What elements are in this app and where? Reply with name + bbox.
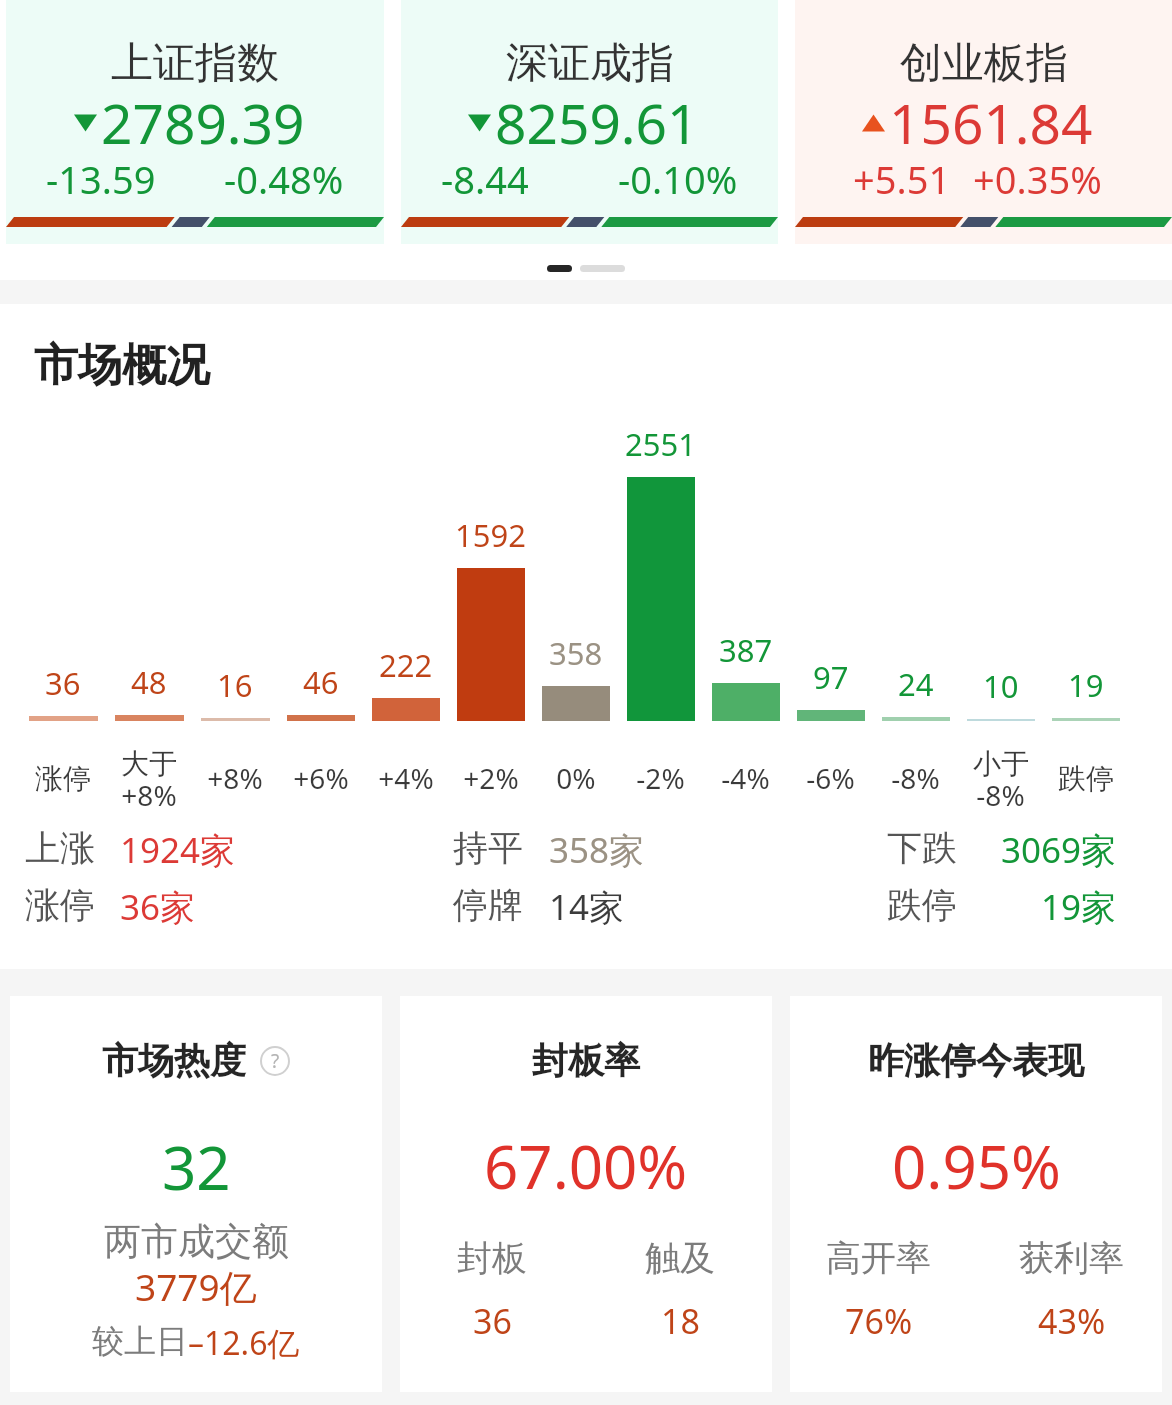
staticText: +0.35% (973, 153, 1102, 205)
button[interactable]: 市场热度 (10, 996, 382, 1392)
button[interactable]: 上证指数 (6, 0, 384, 244)
staticText: 43% (1038, 1298, 1106, 1344)
staticText: +6% (293, 759, 349, 797)
staticText: 222 (379, 644, 433, 686)
staticText: 48 (131, 661, 167, 703)
staticText: 36家 (120, 883, 196, 931)
staticText: 19家 (1041, 883, 1117, 931)
staticText: 97 (813, 656, 849, 698)
staticText: 76% (845, 1298, 913, 1344)
staticText: 16 (217, 664, 253, 706)
staticText: -8.44 (441, 153, 529, 205)
button[interactable]: 封板率 (400, 996, 772, 1392)
button[interactable]: 深证成指 (401, 0, 778, 244)
staticText: 触及 (645, 1236, 715, 1280)
staticText: ? (271, 1048, 280, 1074)
staticText: 创业板指 (900, 37, 1068, 90)
staticText: 跌停 (1058, 761, 1114, 796)
staticText: 较上日 (92, 1321, 188, 1361)
staticText: -0.10% (618, 153, 738, 205)
staticText: 1592 (455, 514, 526, 556)
staticText: 24 (898, 663, 934, 705)
staticText: 36 (45, 662, 81, 704)
button[interactable]: 昨涨停今表现 (790, 996, 1162, 1392)
staticText: -2% (636, 759, 685, 797)
staticText: 358家 (549, 826, 645, 874)
staticText: 1924家 (120, 826, 236, 874)
staticText: 1561.84 (889, 85, 1093, 160)
staticText: 大于 (121, 746, 177, 781)
staticText: 358 (549, 632, 603, 674)
staticText: -8% (976, 776, 1025, 814)
staticText: 8259.61 (495, 85, 699, 160)
staticText: 14家 (549, 883, 625, 931)
staticText: 36 (473, 1298, 512, 1344)
staticText: 32 (162, 1126, 231, 1208)
button[interactable]: 创业板指 (795, 0, 1172, 244)
staticText: 市场概况 (34, 338, 210, 393)
staticText: 18 (661, 1298, 700, 1344)
staticText: -4% (721, 759, 770, 797)
staticText: 封板 (457, 1236, 527, 1280)
staticText: 持平 (453, 826, 523, 870)
staticText: +4% (378, 759, 434, 797)
staticText: 小于 (973, 746, 1029, 781)
staticText: +5.51 (853, 153, 951, 205)
staticText: 涨停 (25, 883, 95, 927)
staticText: 0% (556, 759, 596, 797)
staticText: 387 (719, 629, 773, 671)
staticText: 上证指数 (111, 37, 279, 90)
staticText: 深证成指 (506, 37, 674, 90)
staticText: 市场热度 (102, 1038, 246, 1083)
staticText: –12.6亿 (188, 1321, 300, 1365)
staticText: 跌停 (887, 883, 957, 927)
staticText: 两市成交额 (104, 1218, 289, 1265)
staticText: 3069家 (1001, 826, 1117, 874)
staticText: 停牌 (453, 883, 523, 927)
staticText: -0.48% (224, 153, 344, 205)
staticText: +8% (207, 759, 263, 797)
staticText: +8% (121, 776, 177, 814)
staticText: 46 (303, 661, 339, 703)
staticText: -8% (891, 759, 940, 797)
staticText: -6% (806, 759, 855, 797)
staticText: 下跌 (887, 826, 957, 870)
staticText: 高开率 (826, 1236, 931, 1280)
staticText: 67.00% (484, 1125, 688, 1207)
staticText: +2% (463, 759, 519, 797)
staticText: 涨停 (35, 761, 91, 796)
staticText: 上涨 (25, 826, 95, 870)
staticText: 获利率 (1019, 1236, 1124, 1280)
staticText: 19 (1068, 664, 1104, 706)
staticText: 封板率 (532, 1038, 640, 1083)
staticText: 3779亿 (135, 1261, 257, 1312)
staticText: 0.95% (892, 1125, 1061, 1207)
staticText: 昨涨停今表现 (868, 1038, 1084, 1083)
staticText: 2551 (625, 423, 696, 465)
staticText: -13.59 (46, 153, 156, 205)
staticText: 2789.39 (101, 85, 305, 160)
staticText: 10 (983, 665, 1019, 707)
